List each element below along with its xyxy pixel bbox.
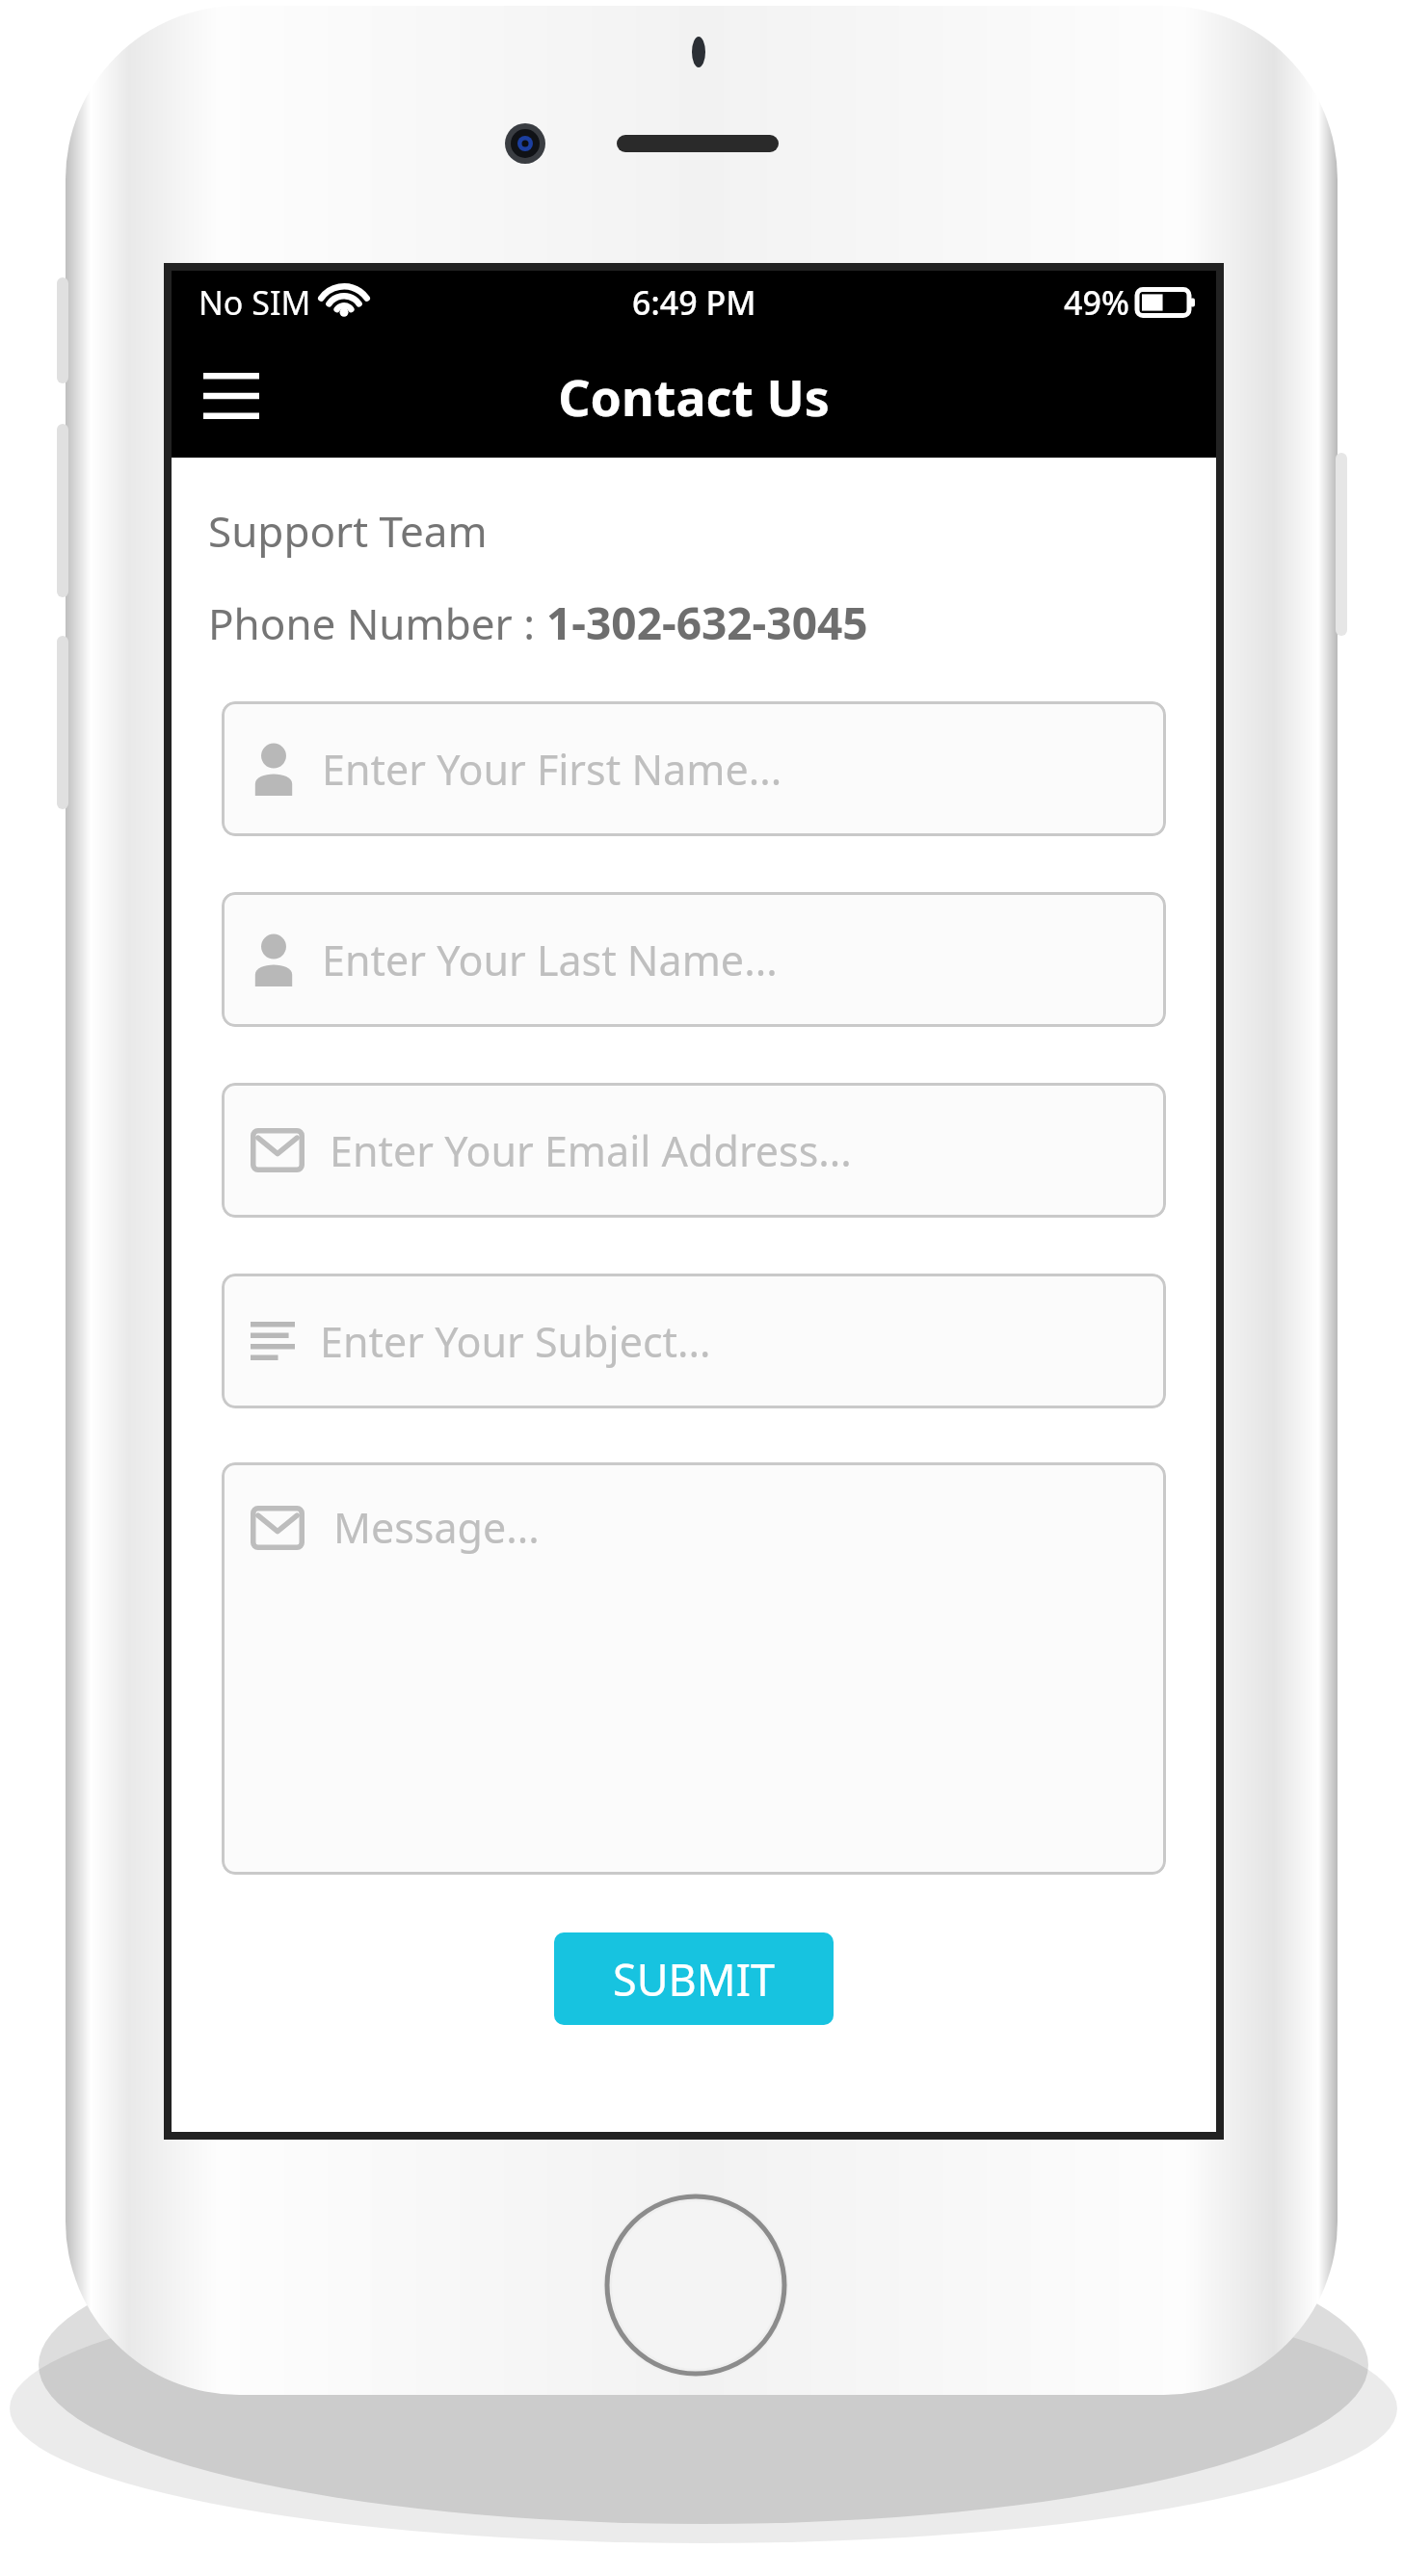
button[interactable]: Enter Your Subject...	[222, 1274, 1166, 1408]
staticText: Enter Your Last Name...	[322, 932, 778, 988]
staticText: Phone Number :	[208, 594, 546, 652]
button[interactable]: Message...	[222, 1462, 1166, 1875]
staticText: Contact Us	[558, 362, 830, 431]
button[interactable]: SUBMIT	[554, 1932, 834, 2025]
button[interactable]: Enter Your Email Address...	[222, 1083, 1166, 1218]
staticText: Enter Your First Name...	[322, 741, 782, 798]
button[interactable]: Open navigation menu	[185, 350, 278, 442]
staticText: 49%	[1064, 280, 1129, 325]
staticText: SUBMIT	[613, 1950, 775, 2009]
staticText: 6:49 PM	[632, 280, 756, 325]
button[interactable]: Enter Your Last Name...	[222, 892, 1166, 1027]
staticText: 1-302-632-3045	[546, 592, 868, 653]
staticText: Message...	[333, 1499, 540, 1556]
staticText: Enter Your Subject...	[320, 1313, 711, 1370]
staticText: Support Team	[208, 502, 488, 560]
staticText: Enter Your Email Address...	[330, 1122, 852, 1179]
staticText: No SIM	[199, 280, 311, 325]
button[interactable]: Enter Your First Name...	[222, 701, 1166, 836]
